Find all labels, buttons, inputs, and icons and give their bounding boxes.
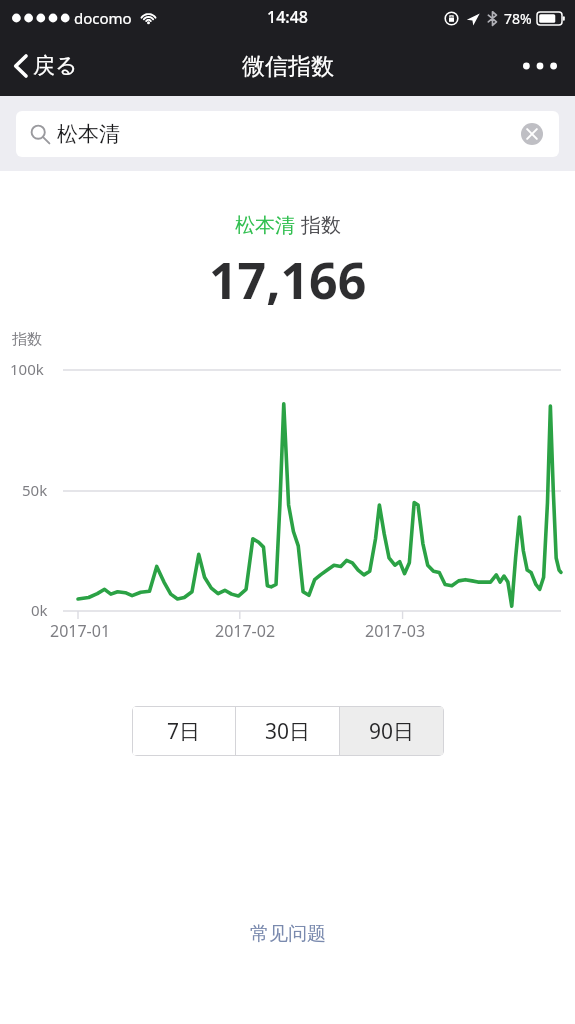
staticText: 78% <box>504 9 532 28</box>
button[interactable]: 戻る <box>0 44 94 88</box>
staticText: 50k <box>22 480 48 500</box>
staticText: 2017-03 <box>365 620 426 642</box>
staticText: 2017-01 <box>50 620 111 642</box>
staticText: 90日 <box>369 717 415 746</box>
staticText: 常见问题 <box>250 922 326 946</box>
staticText: 2017-02 <box>215 620 276 642</box>
staticText: 松本清 <box>235 213 295 238</box>
staticText: 14:48 <box>267 6 308 28</box>
staticText: 100k <box>10 359 44 379</box>
button[interactable]: 90日 <box>340 707 443 755</box>
button[interactable]: 7日 <box>133 707 235 755</box>
button[interactable]: 松本清 <box>16 111 559 157</box>
staticText: 17,166 <box>209 246 367 314</box>
staticText: 指数 <box>12 330 42 349</box>
button[interactable]: More options <box>505 48 575 84</box>
button[interactable]: 常见问题 <box>230 914 346 954</box>
staticText: 微信指数 <box>242 52 334 81</box>
staticText: 7日 <box>167 717 201 746</box>
staticText: docomo <box>74 8 132 28</box>
staticText: 30日 <box>265 717 311 746</box>
button[interactable]: 30日 <box>236 707 339 755</box>
staticText: 0k <box>31 600 48 620</box>
staticText: 松本清 <box>57 121 120 147</box>
button[interactable]: Clear search <box>519 121 545 147</box>
staticText: 指数 <box>301 213 341 238</box>
staticText: 戻る <box>33 52 78 80</box>
